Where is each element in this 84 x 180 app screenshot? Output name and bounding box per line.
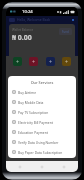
staticText: Fund — [62, 30, 69, 34]
staticText: Buy Paper Data Subscription — [18, 150, 63, 154]
button[interactable]: More services — [62, 57, 71, 66]
staticText: Our Services — [8, 80, 76, 85]
staticText: Electricity Bill Payment — [18, 120, 53, 124]
button[interactable]: Buy Data — [29, 57, 38, 66]
staticText: Buy Mobile Data — [18, 100, 44, 104]
button[interactable]: Buy Airtime — [13, 57, 22, 66]
button[interactable]: Buy Paper Data Subscription — [8, 147, 76, 157]
button[interactable]: Electricity Bill Payment — [8, 117, 76, 127]
button[interactable]: Pay TV Subscription — [8, 107, 76, 117]
button[interactable]: Profile — [9, 18, 15, 22]
button[interactable]: Fund — [59, 28, 72, 35]
staticText: Wallet Balance — [12, 28, 34, 32]
staticText: Education Payment — [18, 130, 48, 134]
staticText: 10:24 — [22, 9, 33, 15]
button[interactable]: Buy Mobile Data — [8, 97, 76, 107]
staticText: Buy Airtime — [18, 90, 37, 94]
button[interactable]: Buy Airtime — [8, 87, 76, 97]
button[interactable]: Notifications — [71, 18, 75, 22]
button[interactable]: Education Payment — [8, 127, 76, 137]
staticText: Verify Data Using Number — [18, 140, 59, 144]
staticText: Hello, Welcome Back — [17, 17, 51, 22]
button[interactable]: Home — [34, 161, 50, 172]
button[interactable]: Pay Bills — [46, 57, 55, 66]
staticText: ₦ 0.00 — [12, 33, 32, 43]
button[interactable]: Verify Data Using Number — [8, 137, 76, 147]
button[interactable]: Recents — [56, 161, 72, 172]
button[interactable]: Back — [12, 161, 28, 172]
staticText: Pay TV Subscription — [18, 110, 49, 114]
